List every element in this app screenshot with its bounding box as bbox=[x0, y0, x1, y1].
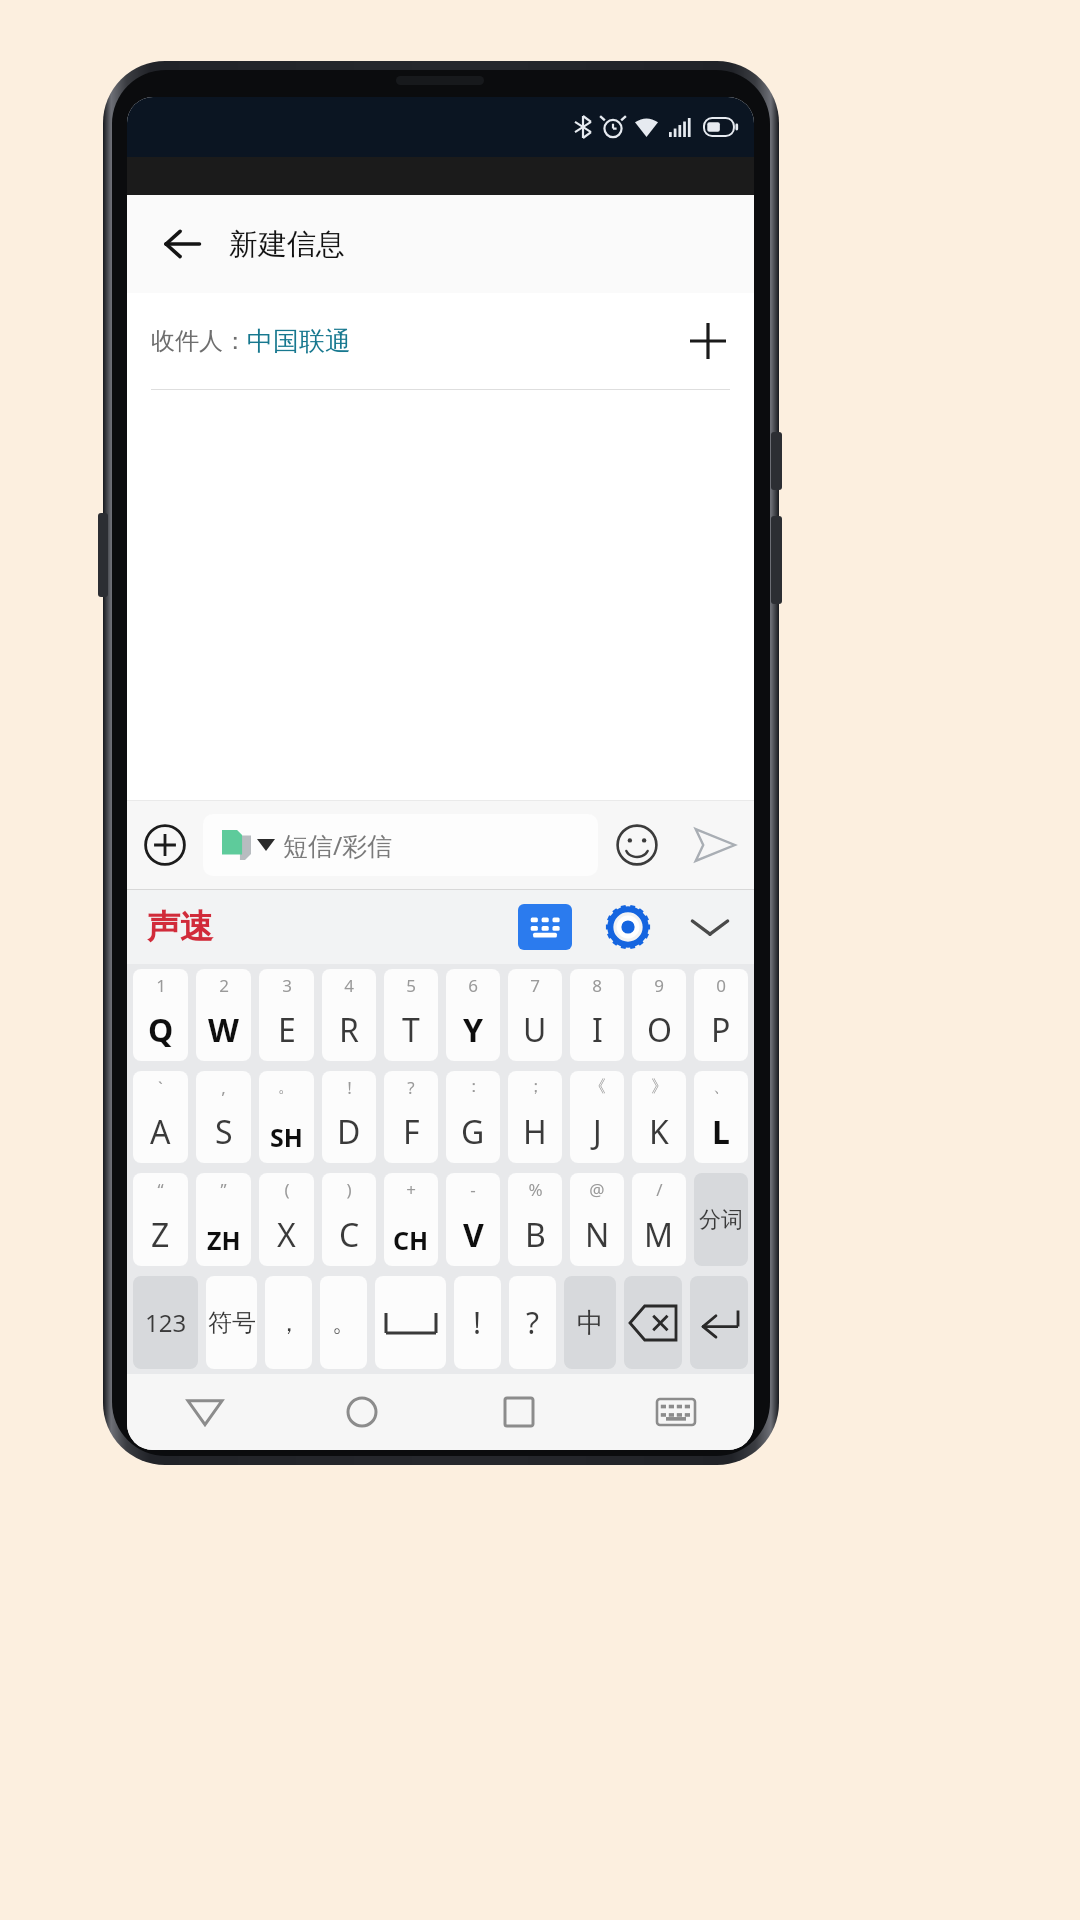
button[interactable]: 、 bbox=[694, 1071, 748, 1163]
button[interactable]: Add recipient bbox=[672, 305, 744, 377]
button[interactable]: ? bbox=[509, 1276, 556, 1369]
staticText: 9 bbox=[654, 974, 664, 997]
staticText: Y bbox=[463, 1008, 484, 1052]
button[interactable]: 符号 bbox=[206, 1276, 257, 1369]
button[interactable]: Emoji bbox=[598, 806, 676, 884]
button[interactable]: ` bbox=[133, 1071, 188, 1163]
button[interactable]: - bbox=[446, 1173, 500, 1266]
staticText: U bbox=[523, 1008, 547, 1052]
staticText: % bbox=[528, 1178, 543, 1201]
button[interactable]: Home bbox=[283, 1374, 440, 1450]
staticText: “ bbox=[157, 1178, 164, 1201]
staticText: 。 bbox=[278, 1076, 295, 1097]
button[interactable]: + bbox=[384, 1173, 438, 1266]
staticText: ` bbox=[158, 1076, 163, 1099]
button[interactable]: 短信/彩信 bbox=[203, 814, 598, 876]
button[interactable]: ) bbox=[322, 1173, 376, 1266]
staticText: V bbox=[463, 1213, 484, 1257]
button[interactable]: 收件人： bbox=[127, 293, 754, 389]
staticText: N bbox=[585, 1213, 610, 1257]
button[interactable]: 8 bbox=[570, 969, 624, 1061]
staticText: ” bbox=[220, 1178, 227, 1201]
button[interactable]: @ bbox=[570, 1173, 624, 1266]
staticText: M bbox=[644, 1213, 674, 1257]
button[interactable]: 。 bbox=[259, 1071, 314, 1163]
button[interactable]: 《 bbox=[570, 1071, 624, 1163]
button[interactable]: % bbox=[508, 1173, 562, 1266]
staticText: 7 bbox=[530, 974, 540, 997]
button[interactable]: Delete bbox=[624, 1276, 682, 1369]
staticText: ZH bbox=[207, 1223, 241, 1257]
button[interactable]: Settings bbox=[600, 899, 656, 955]
button[interactable]: Enter bbox=[690, 1276, 748, 1369]
button[interactable]: 4 bbox=[322, 969, 376, 1061]
button[interactable]: 5 bbox=[384, 969, 438, 1061]
staticText: 6 bbox=[468, 974, 478, 997]
staticText: / bbox=[656, 1178, 663, 1201]
staticText: ： bbox=[465, 1076, 482, 1097]
button[interactable]: Keyboard bbox=[597, 1374, 754, 1450]
button[interactable]: 3 bbox=[259, 969, 314, 1061]
button[interactable]: 123 bbox=[133, 1276, 198, 1369]
staticText: 8 bbox=[592, 974, 602, 997]
button[interactable]: / bbox=[632, 1173, 686, 1266]
button[interactable]: ! bbox=[454, 1276, 501, 1369]
button[interactable]: 中 bbox=[564, 1276, 616, 1369]
staticText: H bbox=[523, 1110, 547, 1154]
button[interactable]: ； bbox=[508, 1071, 562, 1163]
button[interactable]: 6 bbox=[446, 969, 500, 1061]
button[interactable]: ! bbox=[322, 1071, 376, 1163]
button[interactable]: Space bbox=[375, 1276, 446, 1369]
staticText: J bbox=[593, 1110, 602, 1154]
button[interactable]: Keyboard layout bbox=[518, 904, 572, 950]
staticText: I bbox=[592, 1008, 603, 1052]
staticText: ) bbox=[346, 1178, 352, 1201]
staticText: + bbox=[406, 1178, 416, 1201]
staticText: F bbox=[403, 1110, 420, 1154]
button[interactable]: “ bbox=[133, 1173, 188, 1266]
staticText: ， bbox=[277, 1308, 301, 1338]
staticText: 。 bbox=[332, 1308, 356, 1338]
staticText: @ bbox=[589, 1178, 605, 1201]
staticText: 收件人： bbox=[151, 326, 247, 356]
staticText: B bbox=[525, 1213, 546, 1257]
button[interactable]: 。 bbox=[320, 1276, 367, 1369]
button[interactable]: 9 bbox=[632, 969, 686, 1061]
staticText: P bbox=[711, 1008, 731, 1052]
staticText: ? bbox=[526, 1302, 540, 1343]
staticText: ! bbox=[347, 1076, 352, 1099]
staticText: G bbox=[461, 1110, 485, 1154]
staticText: E bbox=[278, 1008, 296, 1052]
staticText: R bbox=[339, 1008, 359, 1052]
button[interactable]: 2 bbox=[196, 969, 251, 1061]
staticText: X bbox=[277, 1213, 296, 1257]
button[interactable]: Recents bbox=[440, 1374, 597, 1450]
staticText: 5 bbox=[406, 974, 416, 997]
button[interactable]: , bbox=[196, 1071, 251, 1163]
button[interactable]: ： bbox=[446, 1071, 500, 1163]
staticText: , bbox=[221, 1076, 226, 1099]
button[interactable]: ? bbox=[384, 1071, 438, 1163]
button[interactable]: 0 bbox=[694, 969, 748, 1061]
staticText: 2 bbox=[219, 974, 229, 997]
button[interactable]: ” bbox=[196, 1173, 251, 1266]
staticText: ! bbox=[473, 1302, 482, 1343]
button[interactable]: ， bbox=[265, 1276, 312, 1369]
button[interactable]: Back bbox=[151, 213, 213, 275]
staticText: 》 bbox=[651, 1076, 668, 1097]
button[interactable]: Send bbox=[676, 806, 754, 884]
staticText: 短信/彩信 bbox=[283, 828, 393, 862]
staticText: L bbox=[712, 1110, 730, 1154]
button[interactable]: Hide keyboard bbox=[680, 897, 740, 957]
staticText: 、 bbox=[713, 1076, 730, 1097]
button[interactable]: 分词 bbox=[694, 1173, 748, 1266]
button[interactable]: 1 bbox=[133, 969, 188, 1061]
staticText: - bbox=[470, 1178, 476, 1201]
button[interactable]: Attach bbox=[127, 807, 203, 883]
button[interactable]: 7 bbox=[508, 969, 562, 1061]
button[interactable]: 》 bbox=[632, 1071, 686, 1163]
button[interactable]: Back bbox=[127, 1374, 283, 1450]
staticText: 3 bbox=[282, 974, 292, 997]
staticText: O bbox=[647, 1008, 672, 1052]
button[interactable]: ( bbox=[259, 1173, 314, 1266]
